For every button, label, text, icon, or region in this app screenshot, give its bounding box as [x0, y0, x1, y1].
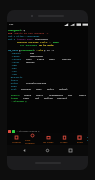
staticText: docker: [26, 60, 35, 63]
staticText: $ ls -l: [44, 48, 55, 51]
staticText: shell frameworks: [36, 93, 68, 96]
button[interactable]: Back: [19, 145, 30, 156]
staticText: :~$: [21, 28, 27, 31]
button[interactable]: Drive: [72, 135, 87, 144]
staticText: view: [23, 96, 35, 99]
staticText: My Cases: [43, 141, 54, 144]
staticText: downloads: [30, 54, 43, 57]
button[interactable]: My Cases: [40, 135, 56, 144]
staticText: notes: [8, 81, 26, 84]
staticText: bin: [30, 51, 35, 54]
staticText: projects: [8, 75, 23, 78]
staticText: conf: [26, 57, 37, 60]
staticText: Reading package lists...: [17, 40, 53, 43]
staticText: ~/storage/shared $: [16, 130, 40, 133]
staticText: iface: [37, 57, 49, 60]
staticText: ~/sto: [36, 48, 44, 51]
staticText: up to date: [39, 43, 54, 46]
staticText: Access: [60, 141, 68, 144]
staticText: net: [35, 96, 44, 99]
staticText: share: [24, 93, 36, 96]
other: Access: [62, 135, 67, 140]
staticText: Get:2: [8, 37, 17, 40]
staticText: Done: [53, 40, 59, 43]
staticText: ~/storage $: [11, 99, 27, 102]
staticText: pkg: [8, 31, 14, 34]
staticText: Autopsy: [12, 141, 21, 144]
staticText: list: [8, 87, 21, 90]
staticText: repo: [8, 84, 17, 87]
staticText: output: [59, 87, 68, 90]
button[interactable]: Recent apps: [65, 145, 76, 156]
staticText: .npm: [8, 63, 17, 66]
other: Drive: [77, 135, 82, 140]
other: Case Creation: [30, 133, 35, 138]
staticText: venv: [49, 57, 62, 60]
staticText: termux main: [17, 37, 35, 40]
button[interactable]: Access: [56, 135, 72, 144]
staticText: .bashrc: [8, 51, 30, 54]
staticText: InRelease: [35, 37, 48, 40]
staticText: .vim: [8, 72, 17, 75]
staticText: entry: [47, 87, 59, 90]
staticText: bottom: [44, 96, 57, 99]
staticText: .pki: [8, 66, 17, 69]
staticText: source: [79, 93, 87, 96]
staticText: spec: [36, 87, 47, 90]
staticText: scripts/backup: [26, 81, 47, 84]
other: Autopsy: [14, 135, 19, 140]
staticText: .cargo: [8, 54, 30, 57]
other: My Cases: [46, 135, 51, 140]
staticText: @: [19, 48, 21, 51]
staticText: user@host: [8, 28, 21, 31]
staticText: search: [8, 93, 24, 96]
staticText: All packages: [20, 43, 39, 46]
staticText: :: [34, 48, 36, 51]
staticText: .ssh: [8, 69, 17, 72]
staticText: .config: [8, 57, 26, 60]
staticText: Hit:1 https://packages: [8, 34, 40, 37]
staticText: Drive: [77, 141, 83, 144]
staticText: rev: [68, 93, 79, 96]
staticText: Case Creation: [25, 139, 39, 145]
staticText: u0_a231: [8, 48, 19, 51]
staticText: 1:34: [9, 23, 14, 26]
staticText: convert: [57, 96, 68, 99]
staticText: release: [21, 87, 36, 90]
button[interactable]: Case Creation: [24, 133, 40, 145]
staticText: tools: [8, 78, 19, 81]
staticText: .local: [8, 60, 26, 63]
staticText: theme: [8, 96, 23, 99]
staticText: localhost: [21, 48, 34, 51]
button[interactable]: Home: [42, 145, 53, 156]
staticText: config: [62, 57, 71, 60]
button[interactable]: Autopsy: [8, 135, 24, 144]
staticText: update && pkg upgrade -y: [14, 31, 49, 34]
